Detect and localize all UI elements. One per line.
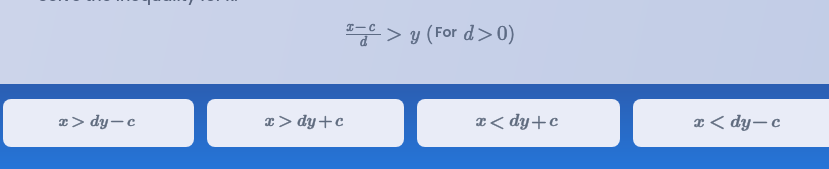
staticText: < [489, 107, 505, 132]
staticText: x [693, 106, 704, 132]
staticText: 0 [497, 16, 508, 46]
staticText: x [693, 106, 704, 132]
staticText: > [71, 108, 86, 131]
button[interactable]: x [3, 99, 194, 147]
staticText: dy [729, 106, 750, 132]
staticText: dy [296, 107, 316, 131]
staticText: < [709, 106, 726, 132]
button[interactable]: x [417, 99, 620, 147]
staticText: dy [729, 106, 750, 132]
staticText: dy [508, 106, 529, 132]
staticText: c [548, 106, 558, 132]
staticText: ( [426, 19, 434, 45]
staticText: c [368, 15, 375, 36]
staticText: d [462, 16, 473, 46]
staticText: ) [508, 19, 516, 45]
staticText: 0 [497, 16, 508, 46]
staticText: c [334, 107, 343, 131]
staticText: c [770, 106, 780, 132]
staticText: + [318, 107, 333, 131]
staticText: − [110, 108, 125, 131]
staticText: > [278, 107, 293, 131]
staticText: d [359, 30, 367, 51]
staticText: > [386, 16, 403, 46]
staticText: ( [426, 19, 434, 45]
staticText: + [531, 107, 547, 132]
staticText: x [475, 106, 485, 132]
staticText: − [355, 15, 367, 36]
staticText: + [531, 107, 547, 132]
staticText: y [409, 16, 420, 46]
staticText: x [264, 107, 274, 131]
staticText: − [752, 106, 769, 132]
staticText: ) [508, 19, 516, 45]
staticText: dy [508, 106, 529, 132]
staticText: c [548, 106, 558, 132]
button[interactable]: x [633, 99, 829, 147]
staticText: > [278, 107, 293, 131]
staticText: > [71, 108, 86, 131]
staticText: dy [89, 108, 108, 131]
button[interactable]: x [207, 99, 404, 147]
staticText: x [475, 106, 485, 132]
staticText: c [126, 108, 135, 131]
staticText: > [477, 16, 494, 46]
staticText: dy [89, 108, 108, 131]
staticText: x [346, 15, 353, 36]
staticText: c [334, 107, 343, 131]
staticText: For [435, 22, 458, 42]
staticText: < [709, 106, 726, 132]
staticText: d [359, 30, 367, 51]
staticText: c [126, 108, 135, 131]
staticText: < [489, 107, 505, 132]
staticText: x [264, 107, 274, 131]
staticText: x [58, 108, 67, 131]
staticText: d [462, 16, 473, 46]
staticText: − [110, 108, 125, 131]
staticText: x [346, 15, 353, 36]
staticText: y [409, 16, 420, 46]
staticText: > [386, 16, 403, 46]
staticText: Solve the inequality for x. [38, 0, 238, 6]
staticText: c [368, 15, 375, 36]
staticText: − [752, 106, 769, 132]
staticText: dy [296, 107, 316, 131]
staticText: x [58, 108, 67, 131]
staticText: > [477, 16, 494, 46]
staticText: − [355, 15, 367, 36]
staticText: + [318, 107, 333, 131]
staticText: c [770, 106, 780, 132]
